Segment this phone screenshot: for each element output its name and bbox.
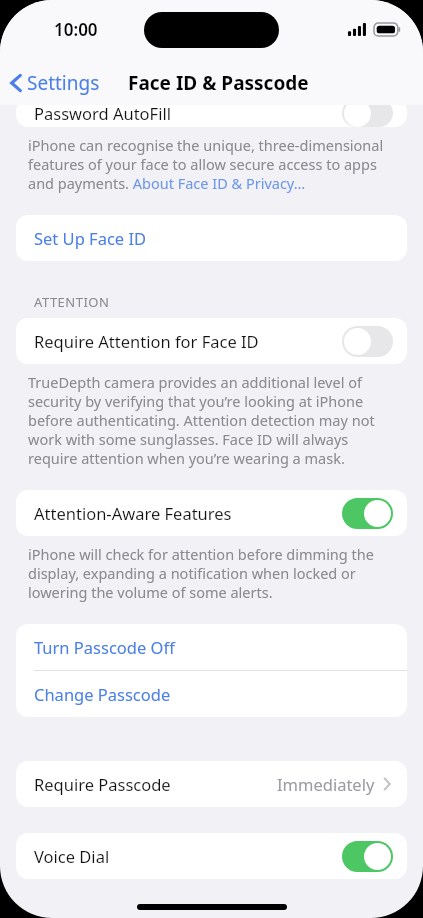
button[interactable]: Attention-Aware Features: [16, 490, 407, 536]
staticText: 10:00: [54, 18, 98, 41]
button[interactable]: Off: [342, 326, 393, 357]
button[interactable]: Require Attention for Face ID: [16, 318, 407, 364]
staticText: TrueDepth camera provides an additional …: [28, 372, 395, 468]
staticText: Require Passcode: [34, 773, 171, 795]
button[interactable]: On: [342, 498, 393, 529]
staticText: Attention-Aware Features: [34, 502, 232, 524]
staticText: Immediately: [277, 773, 375, 795]
staticText: Password AutoFill: [34, 102, 171, 124]
button[interactable]: Turn Passcode Off: [16, 624, 407, 670]
staticText: Turn Passcode Off: [34, 636, 175, 658]
staticText: Voice Dial: [34, 845, 110, 867]
button[interactable]: Change Passcode: [16, 671, 407, 717]
button[interactable]: Off: [342, 99, 393, 127]
button[interactable]: Voice Dial: [16, 833, 407, 879]
staticText: Set Up Face ID: [34, 227, 147, 249]
staticText: iPhone can recognise the unique, three-d…: [28, 135, 395, 193]
button[interactable]: Set Up Face ID: [16, 215, 407, 261]
button[interactable]: On: [342, 841, 393, 872]
button[interactable]: Password AutoFill: [16, 99, 407, 127]
staticText: Change Passcode: [34, 683, 171, 705]
button[interactable]: Require Passcode: [16, 761, 407, 807]
staticText: Settings: [27, 70, 100, 96]
staticText: iPhone will check for attention before d…: [28, 544, 395, 602]
staticText: ATTENTION: [34, 293, 110, 311]
button[interactable]: Settings: [0, 66, 108, 100]
staticText: Require Attention for Face ID: [34, 330, 259, 352]
staticText: Face ID & Passcode: [128, 70, 309, 96]
